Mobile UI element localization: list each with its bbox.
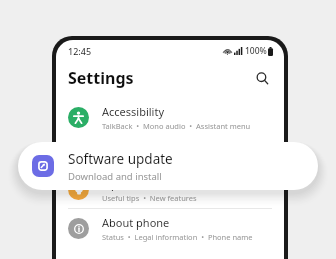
staticText: Download and install	[68, 170, 162, 183]
staticText: Settings	[68, 67, 134, 89]
staticText: Status • Legal information • Phone name	[102, 232, 253, 242]
staticText: Accessibility	[102, 104, 165, 119]
button[interactable]: Accessibility	[56, 98, 284, 136]
staticText: 100%	[245, 45, 267, 57]
button[interactable]: Tips and user manual	[56, 170, 284, 208]
staticText: TalkBack • Mono audio • Assistant menu	[102, 121, 251, 131]
staticText: Software update	[68, 150, 173, 168]
staticText: Tips and user manual	[102, 176, 214, 191]
staticText: Useful tips • New features	[102, 193, 197, 203]
button[interactable]: Search	[252, 68, 272, 88]
staticText: 12:45	[68, 45, 92, 57]
staticText: About phone	[102, 215, 170, 230]
button[interactable]: Software update	[18, 142, 318, 190]
button[interactable]: About phone	[56, 209, 284, 247]
